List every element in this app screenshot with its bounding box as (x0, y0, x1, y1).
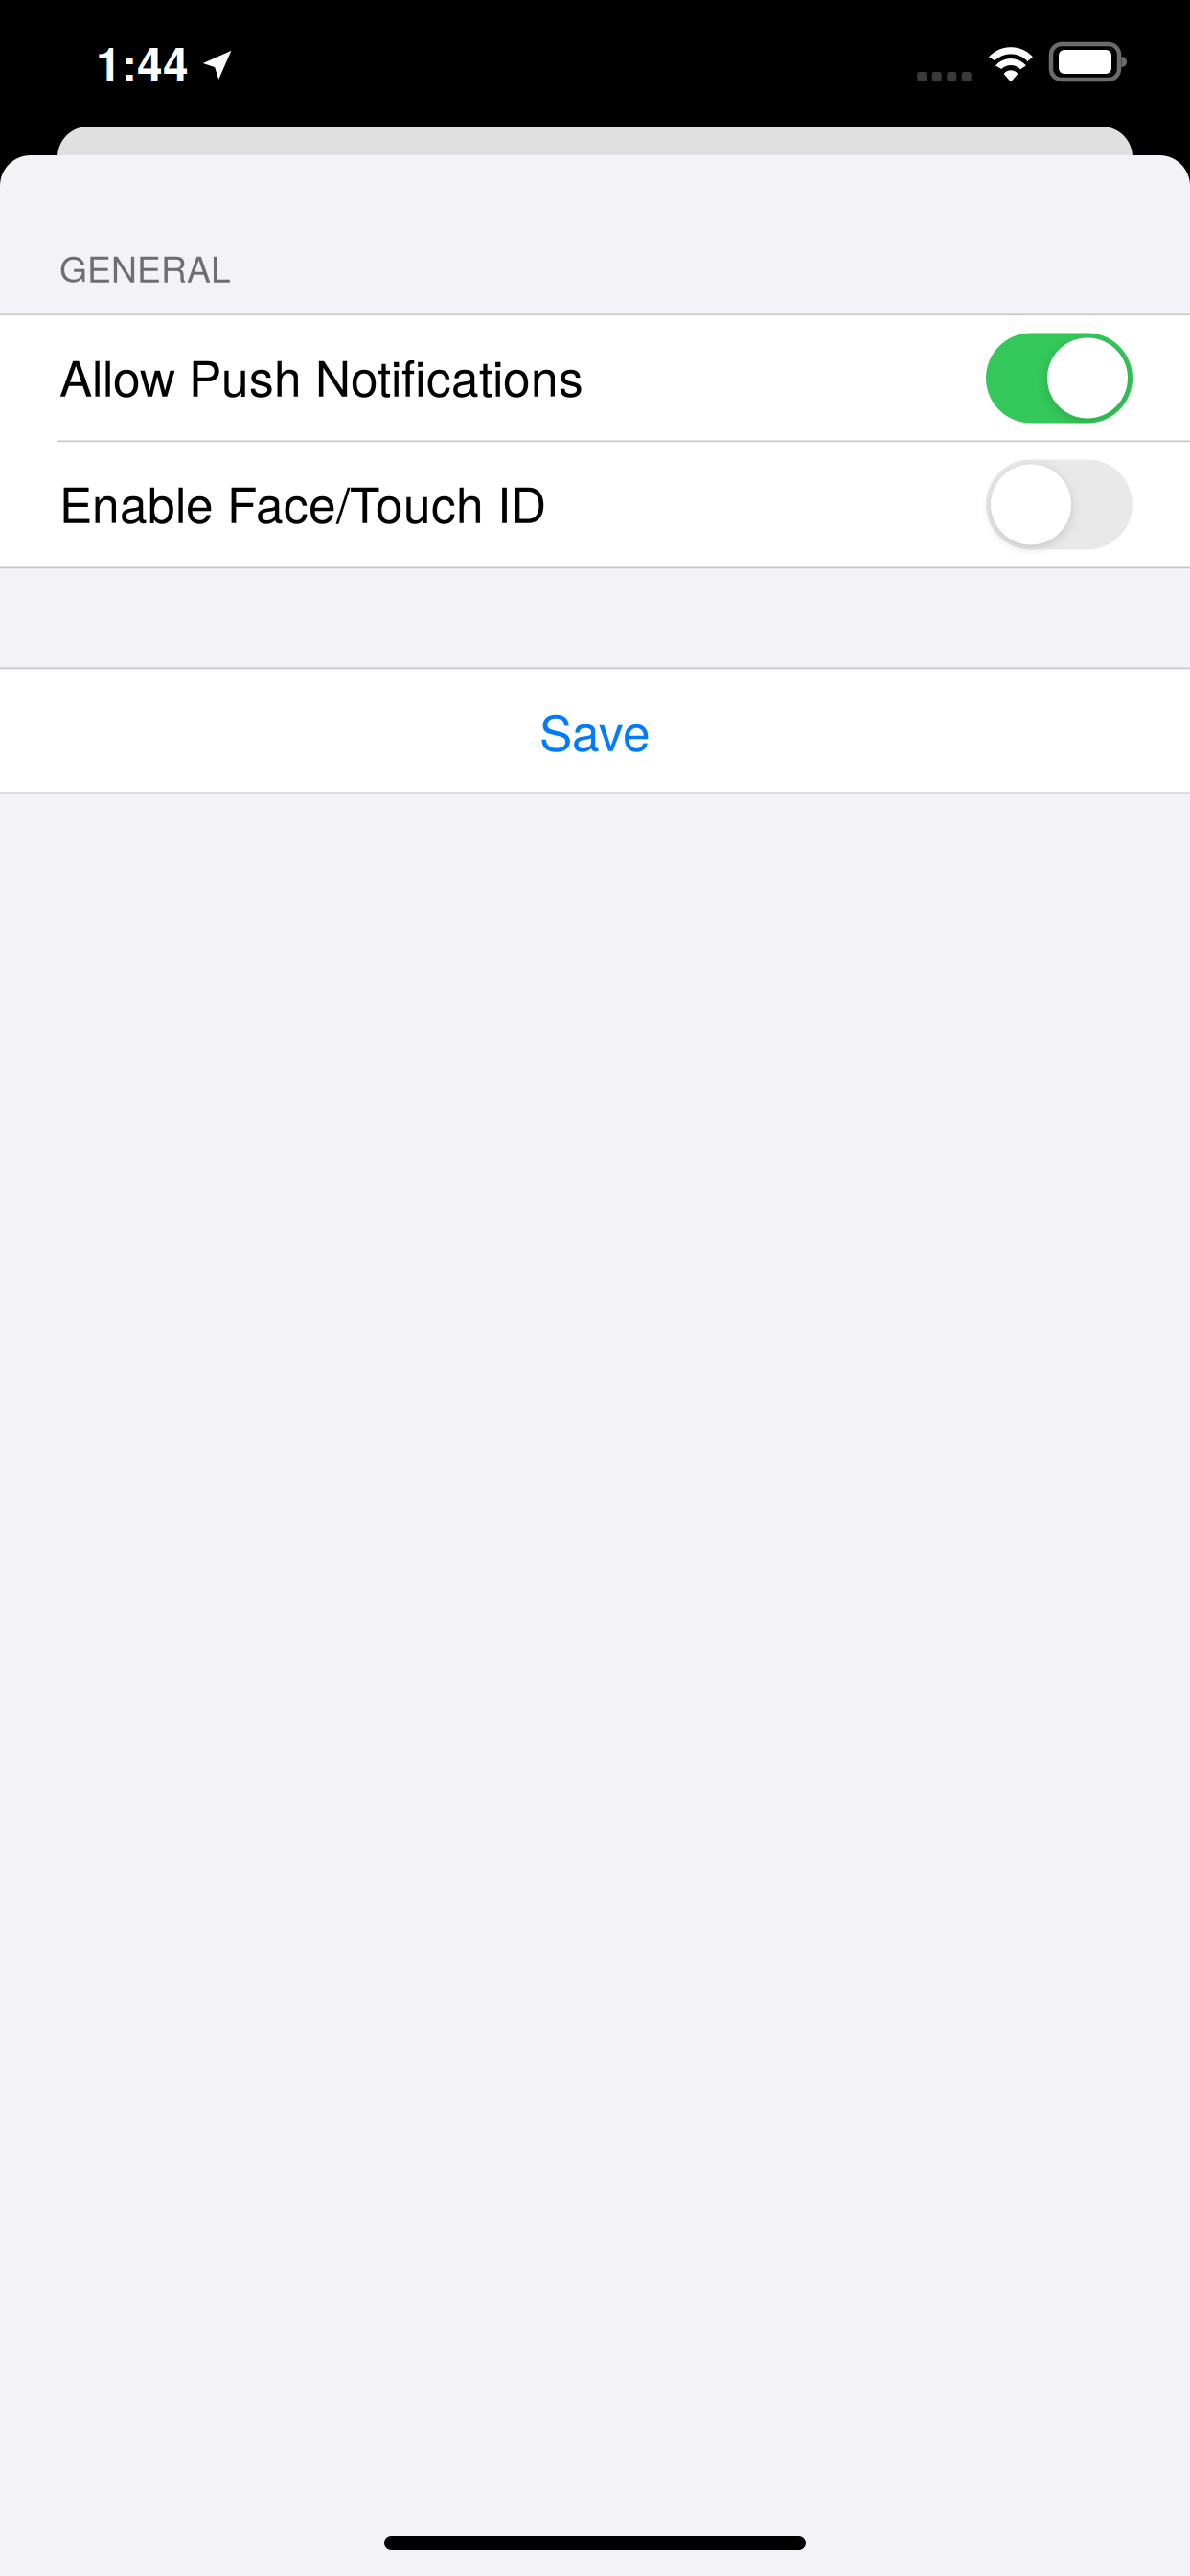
button[interactable]: Enable Face/Touch ID (0, 442, 1190, 567)
staticText: Allow Push Notifications (59, 340, 584, 410)
staticText: 1:44 (96, 30, 189, 96)
staticText: Save (539, 695, 651, 765)
button[interactable]: Allow Push Notifications (0, 316, 1190, 440)
staticText: GENERAL (59, 241, 231, 293)
button[interactable]: Save (0, 669, 1190, 792)
staticText: Enable Face/Touch ID (59, 466, 546, 537)
